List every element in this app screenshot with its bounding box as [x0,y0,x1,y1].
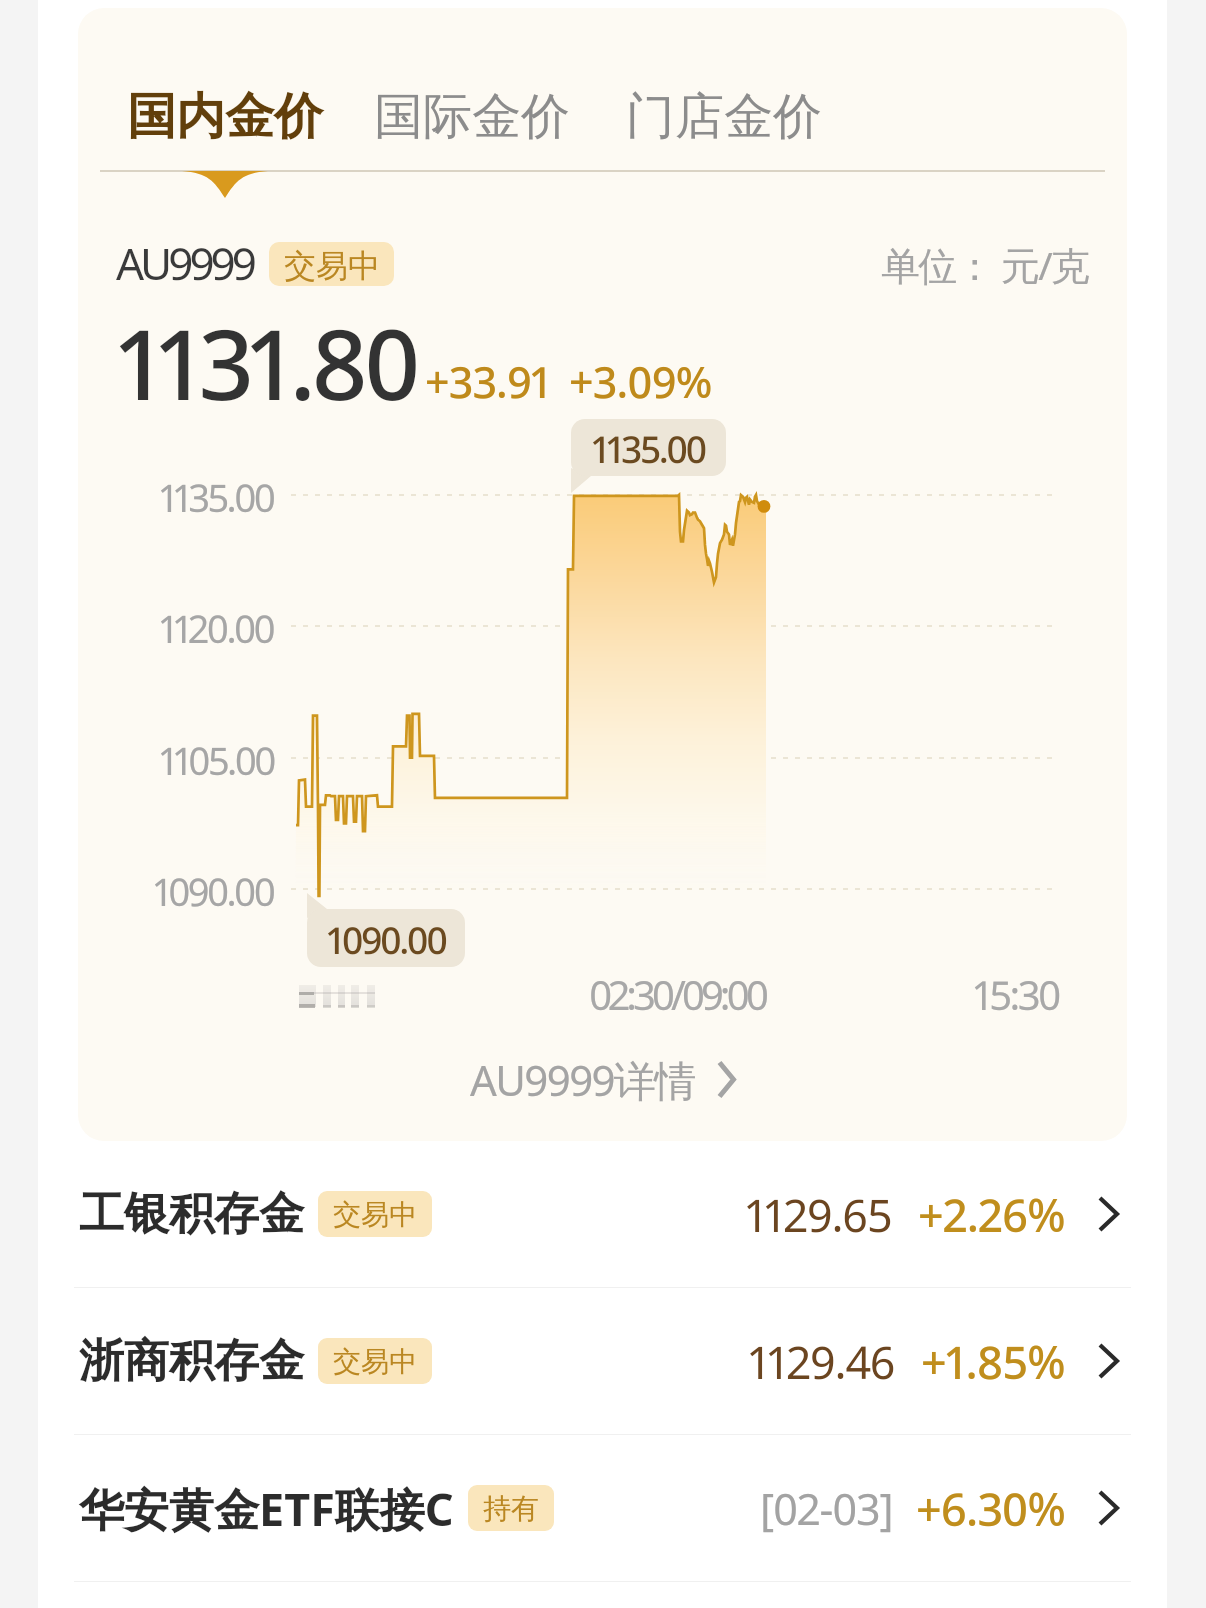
staticText: 1090.00 [327,914,446,964]
staticText: 交易中 [333,1344,417,1379]
staticText: 1135.00 [592,423,705,473]
staticText: 1135.00 [160,471,274,523]
staticText: +3.09% [569,352,712,411]
staticText: 工银积存金 [79,1186,304,1243]
button[interactable]: 华安黄金ETF联接C [38,1435,1167,1581]
staticText: 1131.80 [118,296,417,428]
staticText: 1090.00 [154,865,274,917]
button[interactable]: AU9999详情 [460,1041,746,1118]
staticText: +1.85% [921,1331,1065,1392]
staticText: AU9999 [116,233,253,293]
button[interactable]: 门店金价 [626,76,822,158]
staticText: 浙商积存金 [79,1333,304,1390]
staticText: 交易中 [333,1197,417,1232]
staticText: 1105.00 [160,734,274,786]
staticText: 02:30/09:00 [589,967,765,1021]
staticText: +33.91 [425,352,550,411]
button[interactable]: 国内金价 [127,76,323,158]
staticText: 1129.46 [749,1331,895,1392]
button[interactable]: 国际金价 [374,76,570,158]
button[interactable]: 浙商积存金 [38,1288,1167,1434]
staticText: +6.30% [916,1478,1065,1539]
staticText: 国内金价 [127,86,323,148]
staticText: 门店金价 [626,86,822,148]
staticText: +2.26% [918,1184,1065,1245]
other: Open 工银积存金 details [1098,1196,1119,1232]
staticText: 华安黄金ETF联接C [79,1478,454,1539]
other: Open 浙商积存金 details [1098,1343,1119,1379]
staticText: 1129.65 [746,1184,892,1245]
staticText: 交易中 [284,246,380,286]
other: Open 华安黄金ETF联接C details [1098,1490,1119,1526]
button[interactable]: 工银积存金 [38,1141,1167,1287]
staticText: AU9999详情 [470,1051,695,1108]
staticText: 持有 [483,1491,539,1526]
staticText: 15:30 [974,967,1059,1021]
staticText: [02-03] [760,1479,893,1538]
staticText: 单位： 元/克 [881,238,1089,291]
staticText: 国际金价 [374,86,570,148]
staticText: 1120.00 [160,602,274,654]
